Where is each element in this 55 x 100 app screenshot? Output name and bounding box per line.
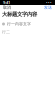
staticText: 行二 [2, 29, 10, 34]
button[interactable]: 发送 [44, 5, 52, 10]
staticText: 大标题文字内容 [2, 11, 37, 18]
staticText: 发送 [44, 5, 52, 10]
button[interactable]: 取消 [3, 5, 11, 10]
staticText: ••• [46, 0, 52, 5]
staticText: 取消 [3, 5, 11, 10]
staticText: 9:41 [3, 0, 10, 5]
staticText: 行一内容文字 [7, 22, 31, 26]
